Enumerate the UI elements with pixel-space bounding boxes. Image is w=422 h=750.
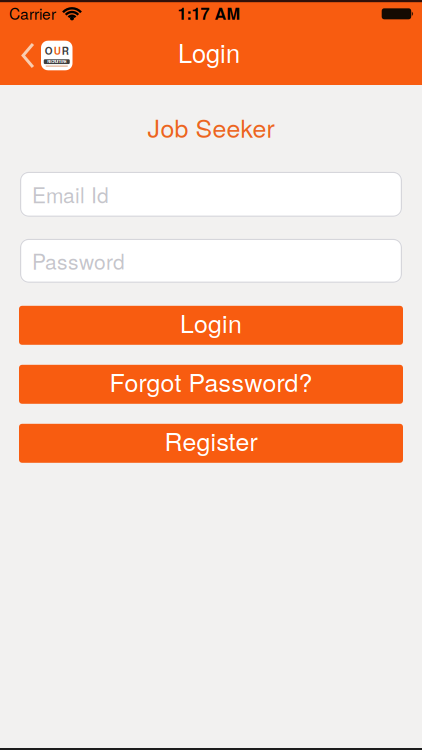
staticText: R: [62, 43, 69, 58]
staticText: RECRUITERS: [47, 59, 66, 64]
staticText: Forgot Password?: [109, 363, 312, 399]
staticText: U: [54, 43, 61, 58]
staticText: Job Seeker: [147, 109, 274, 145]
button[interactable]: Email Id: [20, 172, 402, 217]
staticText: Login: [178, 34, 240, 70]
button[interactable]: Back: [21, 42, 34, 68]
staticText: 1:17 AM: [177, 1, 240, 25]
staticText: Login: [180, 304, 242, 340]
button[interactable]: Login: [19, 306, 403, 345]
button[interactable]: Register: [19, 424, 403, 463]
staticText: Password: [32, 246, 125, 276]
staticText: Register: [164, 422, 257, 458]
staticText: O: [45, 43, 53, 58]
staticText: Email Id: [32, 179, 109, 209]
staticText: Carrier: [9, 2, 56, 24]
button[interactable]: Forgot Password?: [19, 365, 403, 404]
button[interactable]: Password: [20, 239, 402, 283]
